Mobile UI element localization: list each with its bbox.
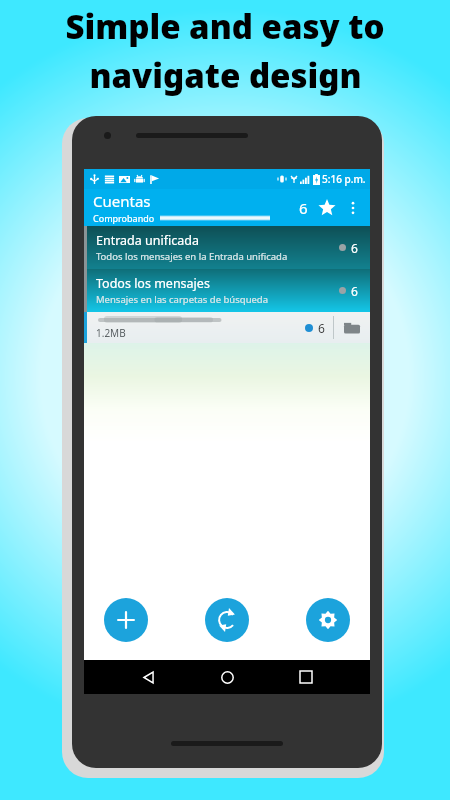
button[interactable]: Home (212, 662, 242, 692)
staticText: 6 (299, 198, 308, 218)
staticText: Mensajes en las carpetas de búsqueda (96, 293, 269, 306)
staticText: 6 (351, 283, 358, 299)
staticText: Todos los mensajes en la Entrada unifica… (96, 250, 288, 263)
staticText: Comprobando (93, 212, 155, 224)
button[interactable]: Entrada unificada (84, 226, 370, 269)
button[interactable]: Settings (306, 598, 350, 642)
button[interactable]: 1.2MB (84, 312, 370, 343)
staticText: Cuentas (93, 191, 151, 211)
staticText: Entrada unificada (96, 232, 199, 249)
staticText: 1.2MB (96, 326, 126, 340)
button[interactable]: Back (133, 662, 163, 692)
button[interactable]: Folder (342, 318, 362, 338)
button[interactable]: Cuentas (84, 189, 370, 226)
button[interactable]: Refresh (205, 598, 249, 642)
staticText: 6 (351, 240, 358, 256)
button[interactable]: Todos los mensajes (84, 269, 370, 312)
button[interactable]: Recents (291, 662, 321, 692)
staticText: Simple and easy to (65, 4, 385, 49)
staticText: 6 (318, 320, 325, 336)
staticText: navigate design (89, 53, 362, 98)
button[interactable]: Favorites (314, 195, 340, 221)
button[interactable]: Add (104, 598, 148, 642)
staticText: 5:16 p.m. (322, 172, 366, 186)
button[interactable]: More options (342, 197, 364, 219)
staticText: Todos los mensajes (96, 275, 210, 292)
